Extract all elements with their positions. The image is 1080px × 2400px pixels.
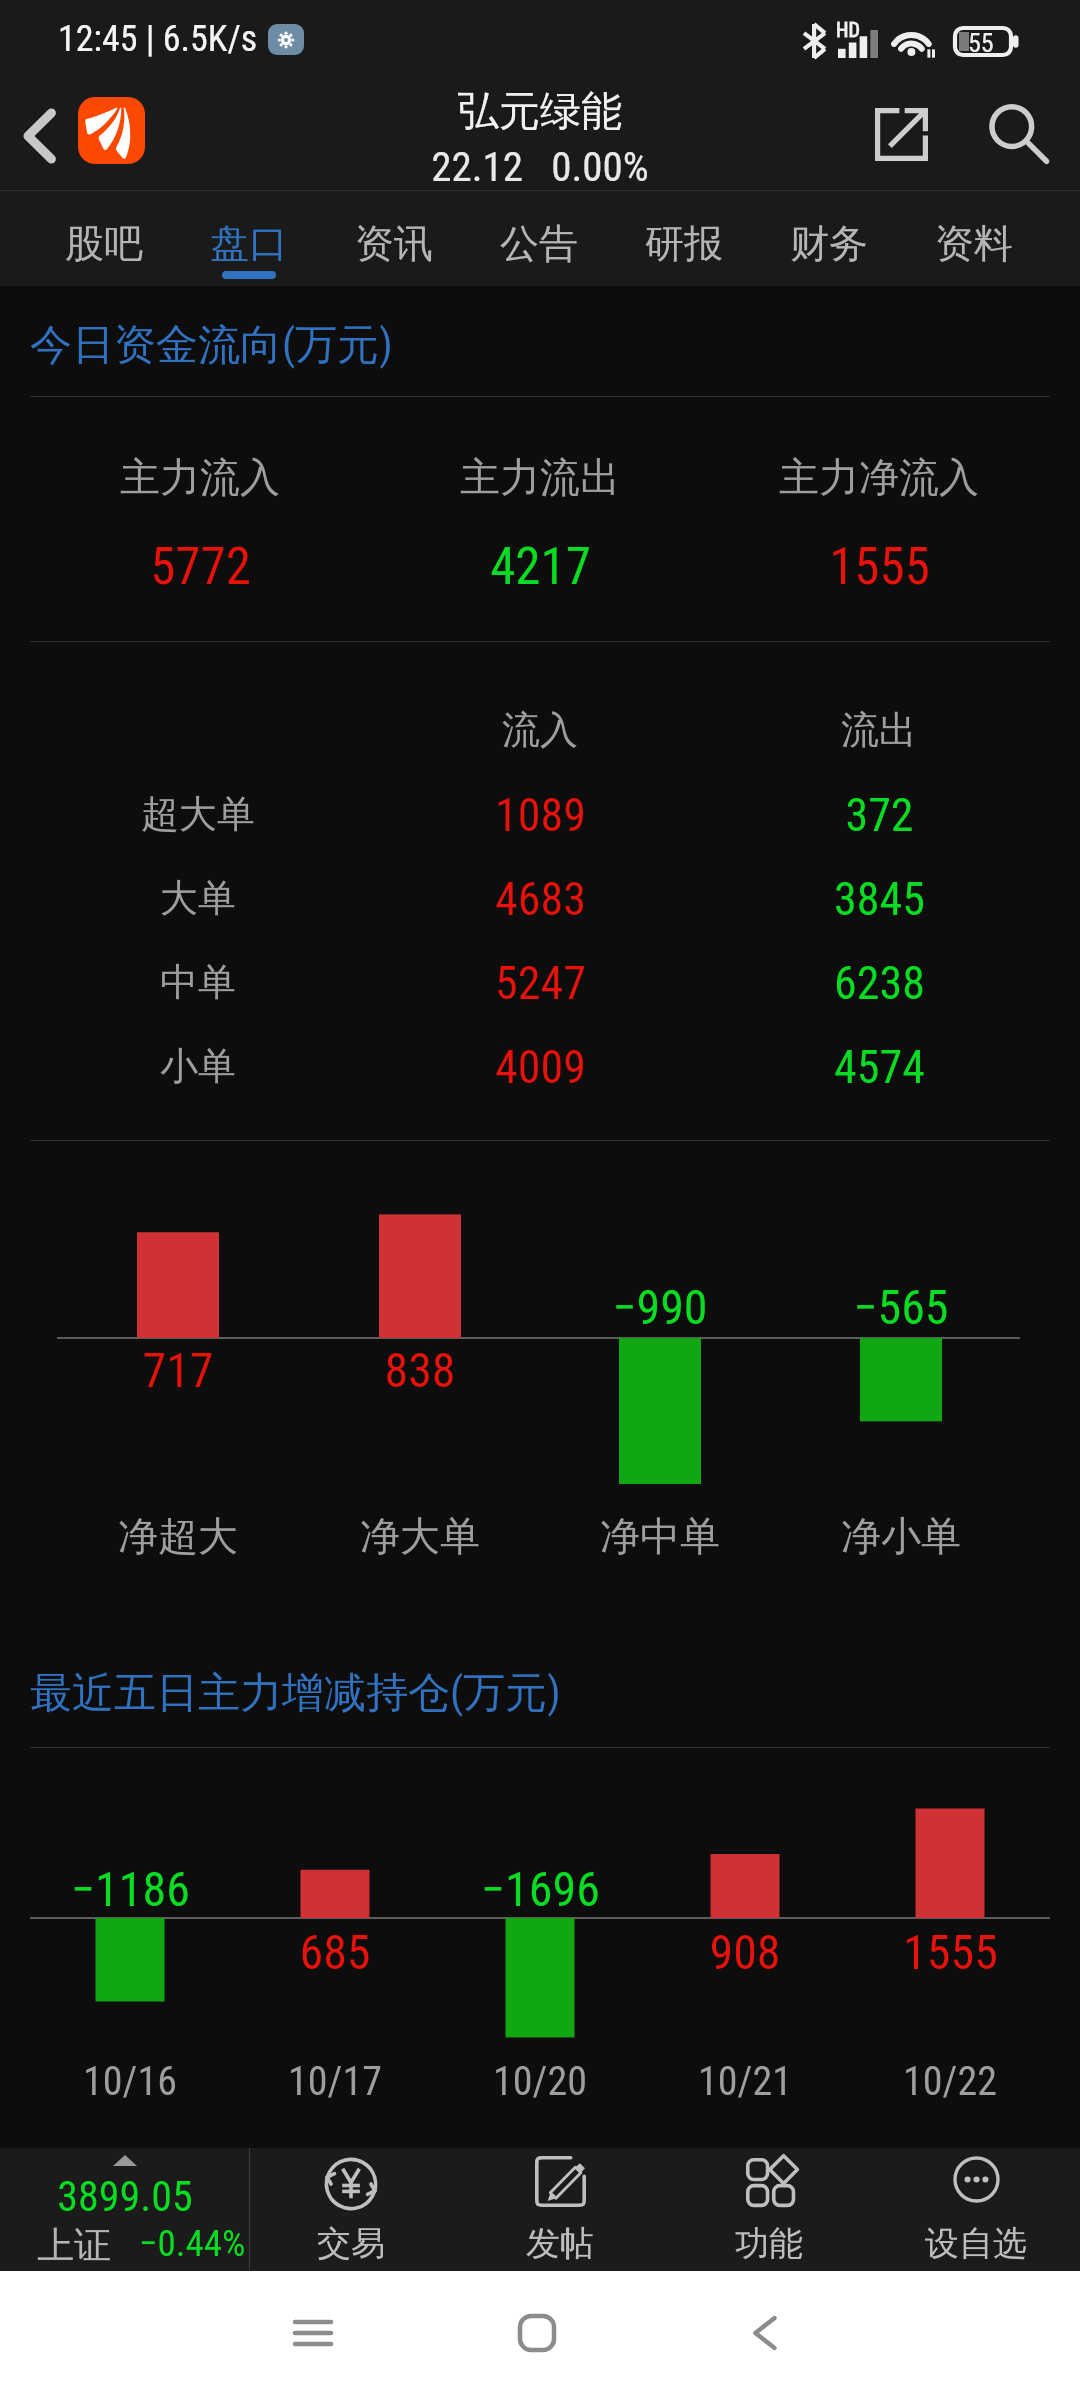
staticText: 流入	[502, 706, 578, 754]
staticText: 4217	[490, 537, 591, 597]
staticText: 大单	[160, 874, 236, 922]
staticText: 372	[845, 788, 914, 842]
button[interactable]: Recents	[268, 2300, 358, 2366]
button[interactable]: 研报	[612, 191, 756, 286]
staticText: 22.12 0.00%	[431, 143, 649, 191]
staticText: 净大单	[360, 1511, 480, 1561]
button[interactable]: 股吧	[32, 191, 176, 286]
staticText: −1186	[71, 1861, 190, 1917]
staticText: 10/21	[698, 2058, 792, 2105]
staticText: 12:45 | 6.5K/s	[58, 18, 258, 60]
staticText: 55	[968, 28, 994, 55]
staticText: −990	[612, 1279, 708, 1335]
button[interactable]: 资料	[902, 191, 1046, 286]
staticText: 1555	[903, 1924, 998, 1980]
staticText: 5772	[150, 537, 251, 597]
staticText: 发帖	[526, 2222, 594, 2265]
staticText: 净中单	[600, 1511, 720, 1561]
staticText: 3899.05	[57, 2172, 193, 2221]
staticText: 上证	[37, 2222, 111, 2269]
staticText: HD	[836, 18, 860, 41]
staticText: 1555	[829, 537, 930, 597]
staticText: 小单	[160, 1042, 236, 1090]
staticText: 4009	[495, 1040, 586, 1094]
staticText: 公告	[500, 219, 578, 268]
button[interactable]: 设自选	[876, 2148, 1076, 2271]
staticText: 10/16	[83, 2058, 177, 2105]
button[interactable]: 交易	[251, 2148, 451, 2271]
staticText: 资料	[935, 219, 1013, 268]
button[interactable]: Home	[492, 2298, 582, 2368]
staticText: 中单	[160, 958, 236, 1006]
button[interactable]: 盘口	[177, 191, 321, 286]
staticText: 设自选	[925, 2222, 1027, 2265]
button[interactable]: 公告	[467, 191, 611, 286]
button[interactable]: 资讯	[322, 191, 466, 286]
staticText: −1696	[481, 1861, 600, 1917]
staticText: 5247	[495, 956, 586, 1010]
staticText: 685	[299, 1924, 371, 1980]
button[interactable]: 财务	[757, 191, 901, 286]
staticText: 1089	[495, 788, 586, 842]
staticText: 908	[709, 1924, 781, 1980]
button[interactable]: 发帖	[460, 2148, 660, 2271]
staticText: 超大单	[141, 790, 255, 838]
button[interactable]: Search	[972, 88, 1064, 180]
staticText: 3845	[834, 872, 925, 926]
button[interactable]: 功能	[669, 2148, 869, 2271]
button[interactable]: 3899.05	[0, 2148, 249, 2271]
staticText: 交易	[317, 2222, 385, 2265]
staticText: 主力流入	[120, 452, 280, 502]
staticText: 资讯	[355, 219, 433, 268]
staticText: −565	[853, 1279, 949, 1335]
staticText: −0.44%	[139, 2222, 246, 2265]
staticText: 10/20	[493, 2058, 587, 2105]
staticText: 净小单	[841, 1511, 961, 1561]
staticText: 功能	[735, 2222, 803, 2265]
staticText: 研报	[645, 219, 723, 268]
staticText: 838	[384, 1342, 456, 1398]
button[interactable]: Back	[8, 90, 72, 182]
staticText: 10/22	[903, 2058, 997, 2105]
staticText: 10/17	[288, 2058, 382, 2105]
staticText: 最近五日主力增减持仓(万元)	[30, 1667, 561, 1720]
staticText: 4683	[495, 872, 586, 926]
staticText: 主力净流入	[779, 452, 979, 502]
button[interactable]: Back	[720, 2298, 810, 2368]
staticText: 财务	[790, 219, 868, 268]
staticText: 今日资金流向(万元)	[30, 319, 393, 372]
staticText: 股吧	[65, 219, 143, 268]
staticText: 6238	[834, 956, 925, 1010]
staticText: 717	[142, 1342, 214, 1398]
staticText: 流出	[841, 706, 917, 754]
staticText: 4574	[834, 1040, 925, 1094]
staticText: 净超大	[118, 1511, 238, 1561]
staticText: 主力流出	[460, 452, 620, 502]
button[interactable]: Share	[855, 88, 947, 180]
staticText: 弘元绿能	[458, 86, 622, 138]
button[interactable]: East Money	[78, 97, 145, 164]
staticText: 盘口	[210, 219, 288, 268]
